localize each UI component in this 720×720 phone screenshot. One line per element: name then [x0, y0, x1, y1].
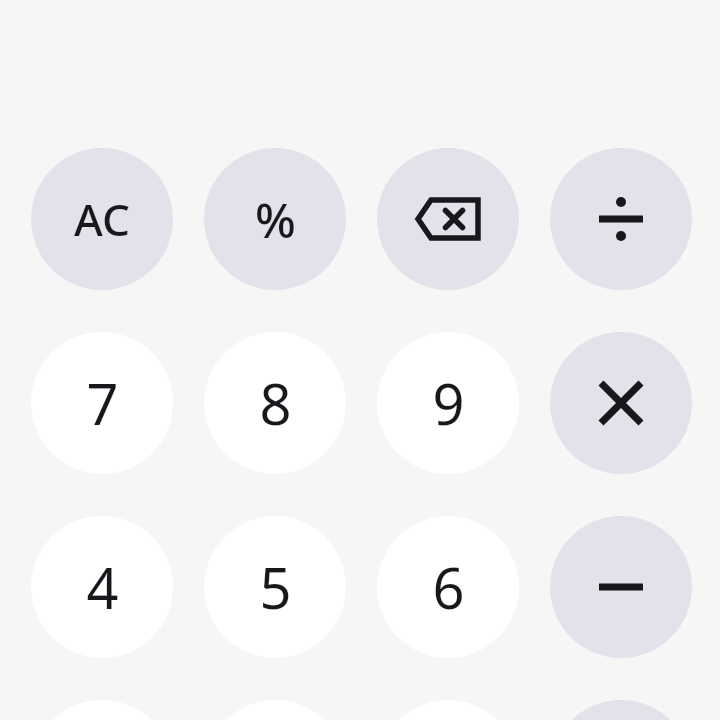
staticText: 5: [259, 549, 292, 625]
button[interactable]: 3: [377, 700, 519, 720]
staticText: 9: [432, 365, 465, 441]
staticText: 7: [86, 365, 119, 441]
button[interactable]: AC: [31, 148, 173, 290]
button[interactable]: 1: [31, 700, 173, 720]
button[interactable]: 4: [31, 516, 173, 658]
button[interactable]: 9: [377, 332, 519, 474]
button[interactable]: 2: [204, 700, 346, 720]
button[interactable]: Add: [550, 700, 692, 720]
button[interactable]: 5: [204, 516, 346, 658]
staticText: 6: [432, 549, 465, 625]
button[interactable]: Subtract: [550, 516, 692, 658]
staticText: 8: [259, 365, 292, 441]
button[interactable]: Backspace: [377, 148, 519, 290]
button[interactable]: 7: [31, 332, 173, 474]
staticText: %: [255, 187, 296, 252]
button[interactable]: Divide: [550, 148, 692, 290]
button[interactable]: 6: [377, 516, 519, 658]
button[interactable]: Multiply: [550, 332, 692, 474]
staticText: 4: [86, 549, 119, 625]
button[interactable]: %: [204, 148, 346, 290]
staticText: AC: [74, 189, 130, 249]
button[interactable]: 8: [204, 332, 346, 474]
